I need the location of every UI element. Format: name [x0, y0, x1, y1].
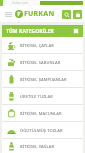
button[interactable]: Cart: [73, 10, 82, 19]
button[interactable]: Search: [62, 10, 71, 19]
button[interactable]: BİTKİSEL SABUNLAR: [2, 54, 83, 70]
staticText: BİTKİSEL MACUNLAR: [20, 111, 62, 116]
staticText: BİTKİSEL SABUNLAR: [20, 60, 61, 65]
staticText: BİTKİSEL YAĞLAR: [20, 144, 55, 149]
button[interactable]: TÜM KATEGORİLER: [2, 25, 83, 37]
staticText: ÜRETİLE TUZLAR: [20, 94, 53, 99]
button[interactable]: Furkan home: [15, 9, 55, 19]
button[interactable]: BİTKİSEL YAĞLAR: [2, 139, 83, 153]
button[interactable]: ÜRETİLE TUZLAR: [2, 88, 83, 104]
staticText: FURKAN: [24, 9, 55, 19]
button[interactable]: BİTKİSEL MACUNLAR: [2, 105, 83, 121]
staticText: BİTKİSEL ÇAYLAR: [20, 43, 54, 48]
button[interactable]: BİTKİSEL ŞAMPUANLAR: [2, 71, 83, 87]
button[interactable]: BİTKİSEL ÇAYLAR: [2, 37, 83, 53]
staticText: TÜM KATEGORİLER: [6, 28, 54, 35]
staticText: furkan.com: [12, 1, 29, 5]
button[interactable]: Menu: [3, 9, 13, 19]
staticText: BİTKİSEL ŞAMPUANLAR: [20, 77, 67, 82]
button[interactable]: ÖĞÜTÜLMÜŞ TOZLAR: [2, 122, 83, 138]
staticText: ÖĞÜTÜLMÜŞ TOZLAR: [20, 128, 63, 133]
